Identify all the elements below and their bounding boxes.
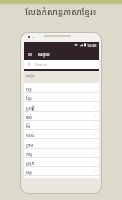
staticText: កម្ម bbox=[26, 151, 32, 157]
staticText: ម៉ែ bbox=[26, 123, 31, 129]
staticText: ស្រុក bbox=[26, 160, 35, 166]
staticText: Search bbox=[35, 62, 48, 67]
staticText: ក្រម bbox=[26, 142, 34, 148]
button[interactable]: ស្រុក bbox=[24, 158, 99, 167]
staticText: មេរៀន bbox=[26, 73, 35, 78]
button[interactable]: ចាស់ bbox=[24, 130, 99, 139]
button[interactable]: Search bbox=[24, 60, 99, 69]
button[interactable]: ក្រម bbox=[24, 140, 99, 149]
button[interactable]: ពុទ្ធ bbox=[24, 84, 99, 93]
button[interactable]: ខ្មែរ bbox=[24, 93, 99, 102]
button[interactable]: ប្រវត្តិ bbox=[24, 103, 99, 112]
staticText: ខ្មែរ bbox=[26, 95, 32, 101]
staticText: 12:30 bbox=[87, 43, 97, 48]
button[interactable]: មន្ត bbox=[24, 167, 99, 176]
staticText: ប្រវត្តិ bbox=[26, 105, 35, 111]
staticText: ធម៌ bbox=[26, 114, 32, 120]
staticText: មេនុយ bbox=[38, 51, 50, 57]
staticText: ចាស់ bbox=[26, 132, 35, 138]
button[interactable]: ធម៌ bbox=[24, 112, 99, 121]
button[interactable]: Open navigation menu bbox=[26, 50, 34, 58]
staticText: លែងកំសាន្តភាសាខ្មែរ៖ bbox=[25, 6, 97, 18]
staticText: ពុទ្ធ bbox=[26, 86, 32, 92]
staticText: មន្ត bbox=[26, 169, 32, 175]
button[interactable]: ម៉ែ bbox=[24, 121, 99, 130]
button[interactable]: កម្ម bbox=[24, 149, 99, 158]
